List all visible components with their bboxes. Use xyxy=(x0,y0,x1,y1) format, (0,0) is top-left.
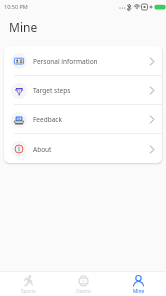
staticText: Mine xyxy=(133,288,145,295)
button[interactable]: Mine xyxy=(111,272,166,296)
staticText: Target steps xyxy=(33,86,71,95)
button[interactable]: Target steps xyxy=(4,76,162,104)
staticText: Mine xyxy=(9,19,38,35)
button[interactable]: About xyxy=(4,134,162,163)
staticText: Personal information xyxy=(33,57,98,66)
staticText: Sports xyxy=(21,288,36,295)
staticText: 10:50 PM xyxy=(4,3,28,10)
staticText: Feedback xyxy=(33,115,62,124)
button[interactable]: Personal information xyxy=(4,46,162,75)
other: Mine xyxy=(133,275,144,287)
button[interactable]: Feedback xyxy=(4,105,162,133)
staticText: About xyxy=(33,145,52,154)
button[interactable]: Device xyxy=(56,272,111,296)
other: Sports xyxy=(23,275,34,287)
other: Device xyxy=(78,275,89,287)
staticText: Device xyxy=(76,288,91,295)
button[interactable]: Sports xyxy=(0,272,56,296)
